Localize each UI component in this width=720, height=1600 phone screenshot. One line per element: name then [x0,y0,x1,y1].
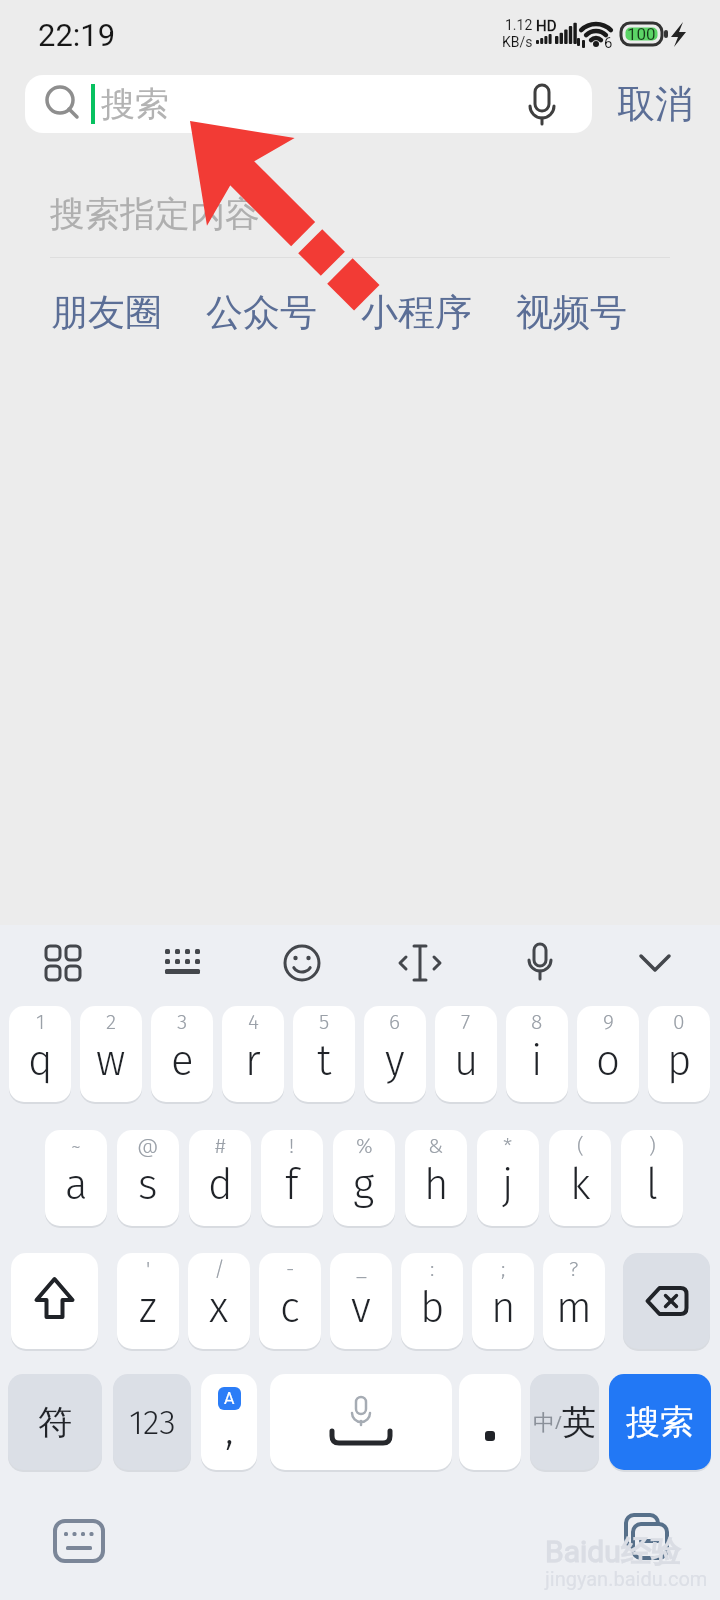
staticText: ; [501,1256,506,1281]
staticText: 2 [106,1009,117,1034]
button[interactable]: ( [549,1130,611,1226]
button[interactable]: 小程序 [360,288,472,336]
button[interactable]: % [333,1130,395,1226]
button[interactable]: 0 [648,1006,710,1102]
button[interactable]: ~ [45,1130,107,1226]
staticText: - [286,1256,295,1281]
button[interactable]: 中 [530,1374,599,1470]
staticText: t [317,1036,332,1086]
staticText: a [65,1160,88,1210]
button[interactable] [270,1374,452,1470]
staticText: ? [569,1256,579,1281]
button[interactable] [459,1374,521,1470]
staticText: 搜索 [101,83,169,126]
button[interactable]: @ [117,1130,179,1226]
staticText: / [214,1256,225,1281]
staticText: _ [356,1256,367,1281]
button[interactable] [11,1253,98,1349]
staticText: x [209,1283,229,1333]
button[interactable]: 符 [8,1374,102,1470]
button[interactable]: 9 [577,1006,639,1102]
button[interactable]: ; [472,1253,534,1349]
button[interactable]: 3 [151,1006,213,1102]
button[interactable]: 2 [80,1006,142,1102]
button[interactable]: 123 [113,1374,191,1470]
staticText: 搜索指定内容 [50,192,260,234]
button[interactable]: 1 [9,1006,71,1102]
button[interactable] [47,1512,111,1570]
staticText: 中 [533,1409,555,1437]
button[interactable]: 搜索 [609,1374,711,1470]
staticText: k [570,1160,591,1210]
button[interactable]: 朋友圈 [50,288,162,336]
staticText: s [138,1160,158,1210]
button[interactable] [388,931,452,995]
button[interactable]: 视频号 [515,288,627,336]
staticText: 6 [389,1009,401,1034]
staticText: 视频号 [516,289,627,336]
staticText: , [225,1405,234,1455]
button[interactable]: _ [330,1253,392,1349]
button[interactable]: 5 [293,1006,355,1102]
staticText: m [556,1283,592,1333]
button[interactable] [623,1253,710,1349]
button[interactable]: ! [261,1130,323,1226]
staticText: p [667,1036,692,1086]
button[interactable] [618,1506,682,1570]
button[interactable] [31,931,95,995]
button[interactable] [508,931,572,995]
button[interactable]: * [477,1130,539,1226]
button[interactable] [623,931,687,995]
staticText: q [28,1036,53,1086]
staticText: w [96,1036,126,1086]
staticText: o [596,1036,620,1086]
button[interactable]: 4 [222,1006,284,1102]
staticText: j [502,1160,514,1210]
staticText: z [139,1283,157,1333]
staticText: 1.12 [505,17,533,33]
button[interactable]: & [405,1130,467,1226]
staticText: 4 [248,1009,259,1034]
staticText: d [208,1160,233,1210]
button[interactable]: ? [543,1253,605,1349]
button[interactable]: : [401,1253,463,1349]
staticText: f [285,1160,299,1210]
staticText: c [280,1283,300,1333]
staticText: 6 [604,34,613,50]
staticText: 100 [627,24,656,44]
button[interactable]: 7 [435,1006,497,1102]
button[interactable]: 6 [364,1006,426,1102]
staticText: u [454,1036,479,1086]
staticText: 取消 [617,80,693,128]
button[interactable]: 8 [506,1006,568,1102]
staticText: 7 [461,1009,471,1034]
staticText: 0 [673,1009,685,1034]
button[interactable]: - [259,1253,321,1349]
button[interactable]: / [188,1253,250,1349]
staticText: g [353,1160,375,1210]
button[interactable]: A [201,1374,257,1470]
staticText: i [531,1036,543,1086]
staticText: HD [536,17,557,33]
button[interactable]: ) [621,1130,683,1226]
staticText: 朋友圈 [51,289,162,336]
button[interactable] [151,931,215,995]
staticText: 9 [603,1009,614,1034]
button[interactable]: 公众号 [205,288,317,336]
staticText: 1 [36,1009,45,1034]
button[interactable]: 搜索 [25,75,592,133]
staticText: ! [289,1133,295,1158]
staticText: 8 [531,1009,543,1034]
staticText: ( [577,1133,584,1158]
button[interactable]: # [189,1130,251,1226]
button[interactable]: ' [117,1253,179,1349]
staticText: n [491,1283,516,1333]
staticText: * [503,1133,513,1158]
staticText: 小程序 [361,289,472,336]
button[interactable]: 取消 [600,75,710,133]
staticText: 符 [38,1401,72,1444]
button[interactable] [270,931,334,995]
staticText: : [430,1256,435,1281]
staticText: jingyan.baidu.com [545,1567,708,1590]
staticText: 3 [177,1009,188,1034]
